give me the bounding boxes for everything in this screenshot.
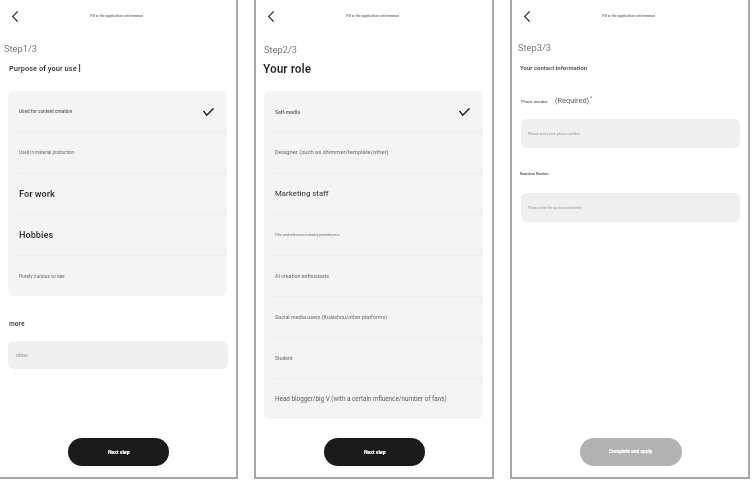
staticText: Please enter the quick hand number xyxy=(528,206,583,210)
staticText: Purely curious to see xyxy=(19,273,214,279)
staticText: other xyxy=(16,352,28,358)
button[interactable]: Used in material production xyxy=(8,132,227,173)
staticText: more xyxy=(9,320,25,328)
staticText: Kuaishou Number xyxy=(520,172,549,176)
button[interactable]: Please enter your phone number xyxy=(521,119,740,148)
staticText: Used in material production xyxy=(19,150,214,155)
button[interactable]: For work xyxy=(8,173,227,214)
staticText: Next step xyxy=(364,449,386,455)
button[interactable]: Next step xyxy=(68,438,169,466)
staticText: Purpose of your use ] xyxy=(9,64,81,73)
staticText: Marketing staff xyxy=(275,189,470,198)
staticText: Self-media xyxy=(275,109,459,115)
staticText: Used for content creation xyxy=(19,109,203,115)
staticText: Fill in the application information xyxy=(90,14,143,18)
staticText: Film and television industry practitione… xyxy=(275,233,470,237)
staticText: Your role xyxy=(263,62,312,76)
staticText: Next step xyxy=(108,449,130,455)
button[interactable]: Social media users (Kuaishou/other platf… xyxy=(264,296,483,337)
staticText: * xyxy=(590,95,593,101)
button[interactable]: Back xyxy=(262,7,280,25)
button[interactable]: Hobbies xyxy=(8,214,227,255)
staticText: Fill in the application information xyxy=(602,14,655,18)
button[interactable]: Used for content creation xyxy=(8,91,227,132)
staticText: Student xyxy=(275,355,470,361)
staticText: Step3/3 xyxy=(518,42,551,53)
button[interactable]: Head blogger/big V (with a certain influ… xyxy=(264,378,483,419)
button[interactable]: Back xyxy=(6,7,24,25)
staticText: Designer (such as shimmer/template/other… xyxy=(275,149,470,156)
button[interactable]: Designer (such as shimmer/template/other… xyxy=(264,132,483,173)
button[interactable]: Student xyxy=(264,337,483,378)
staticText: Phone number xyxy=(521,99,548,104)
button[interactable]: Purely curious to see xyxy=(8,255,227,296)
staticText: Head blogger/big V (with a certain influ… xyxy=(275,395,470,402)
staticText: Step1/3 xyxy=(4,43,37,54)
staticText: Fill in the application information xyxy=(346,14,399,18)
staticText: Complete and apply xyxy=(609,449,653,455)
staticText: Please enter your phone number xyxy=(528,132,580,136)
staticText: Social media users (Kuaishou/other platf… xyxy=(275,314,470,320)
staticText: For work xyxy=(19,188,214,199)
button[interactable]: AI creation enthusiasts xyxy=(264,255,483,296)
button[interactable]: Marketing staff xyxy=(264,173,483,214)
button[interactable]: Self-media xyxy=(264,91,483,132)
button[interactable]: other xyxy=(8,341,228,369)
staticText: Step2/3 xyxy=(264,44,297,55)
button[interactable]: Complete and apply xyxy=(580,438,682,466)
staticText: Your contact information xyxy=(520,64,588,71)
button[interactable]: Back xyxy=(518,7,536,25)
button[interactable]: Please enter the quick hand number xyxy=(521,193,740,222)
button[interactable]: Film and television industry practitione… xyxy=(264,214,483,255)
button[interactable]: Next step xyxy=(324,438,425,466)
staticText: (Required) xyxy=(555,96,590,105)
staticText: AI creation enthusiasts xyxy=(275,273,470,279)
staticText: Hobbies xyxy=(19,229,214,240)
